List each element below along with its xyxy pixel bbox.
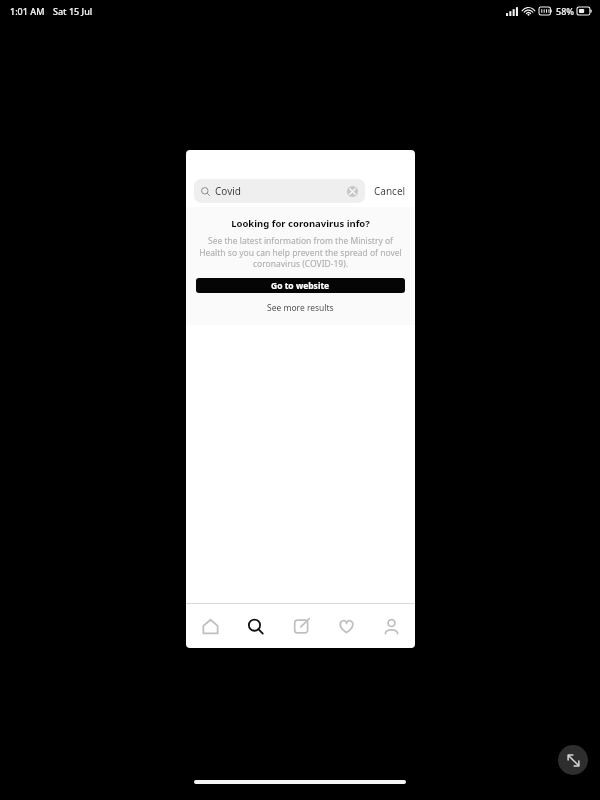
- staticText: 58%: [556, 5, 574, 17]
- staticText: See more results: [267, 302, 334, 314]
- button[interactable]: Clear search: [347, 186, 358, 197]
- staticText: See the latest information from the Mini…: [199, 235, 402, 270]
- staticText: Go to website: [271, 280, 330, 292]
- button[interactable]: Cancel: [373, 181, 407, 201]
- button[interactable]: Search: [234, 604, 276, 648]
- staticText: Sat 15 Jul: [53, 5, 93, 17]
- button[interactable]: Profile: [370, 604, 412, 648]
- staticText: Covid: [215, 184, 241, 198]
- button[interactable]: Covid: [194, 179, 365, 203]
- staticText: Looking for coronavirus info?: [231, 217, 370, 230]
- button[interactable]: Expand window: [558, 745, 588, 775]
- button[interactable]: See more results: [263, 301, 338, 315]
- staticText: 1:01 AM: [10, 5, 45, 17]
- button[interactable]: Create: [280, 604, 322, 648]
- staticText: Cancel: [374, 184, 406, 198]
- button[interactable]: Activity: [325, 604, 367, 648]
- button[interactable]: Go to website: [196, 278, 405, 293]
- button[interactable]: Home: [189, 604, 231, 648]
